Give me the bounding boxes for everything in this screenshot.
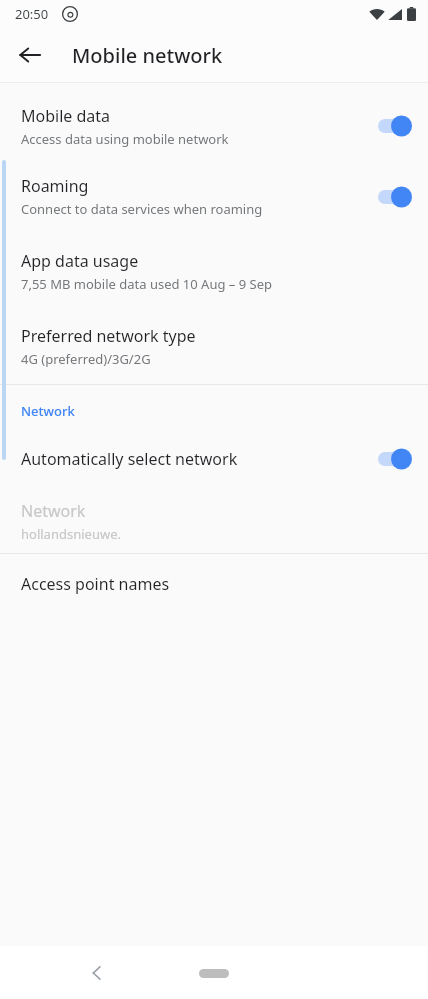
- button[interactable]: Roaming: [0, 159, 428, 234]
- staticText: Network: [21, 402, 75, 420]
- staticText: App data usage: [21, 250, 139, 272]
- button[interactable]: Access point names: [0, 554, 428, 613]
- staticText: 4G (preferred)/3G/2G: [21, 350, 151, 368]
- button[interactable]: Back: [77, 953, 117, 993]
- staticText: Automatically select network: [21, 448, 238, 470]
- staticText: Preferred network type: [21, 325, 196, 347]
- staticText: 7,55 MB mobile data used 10 Aug – 9 Sep: [21, 275, 272, 293]
- button[interactable]: Back: [10, 35, 50, 75]
- staticText: hollandsnieuwe.: [21, 525, 121, 543]
- button[interactable]: App data usage: [0, 234, 428, 309]
- staticText: Mobile data: [21, 105, 111, 127]
- button[interactable]: Mobile data: [0, 93, 428, 159]
- staticText: 20:50: [15, 5, 49, 23]
- button[interactable]: Home: [179, 958, 249, 988]
- staticText: Connect to data services when roaming: [21, 200, 263, 218]
- staticText: Roaming: [21, 175, 89, 197]
- staticText: Access point names: [21, 573, 170, 595]
- button[interactable]: Network: [0, 493, 428, 549]
- button[interactable]: Preferred network type: [0, 309, 428, 384]
- staticText: Mobile network: [72, 42, 223, 69]
- staticText: Network: [21, 500, 86, 522]
- staticText: Access data using mobile network: [21, 130, 229, 148]
- button[interactable]: Automatically select network: [0, 434, 428, 484]
